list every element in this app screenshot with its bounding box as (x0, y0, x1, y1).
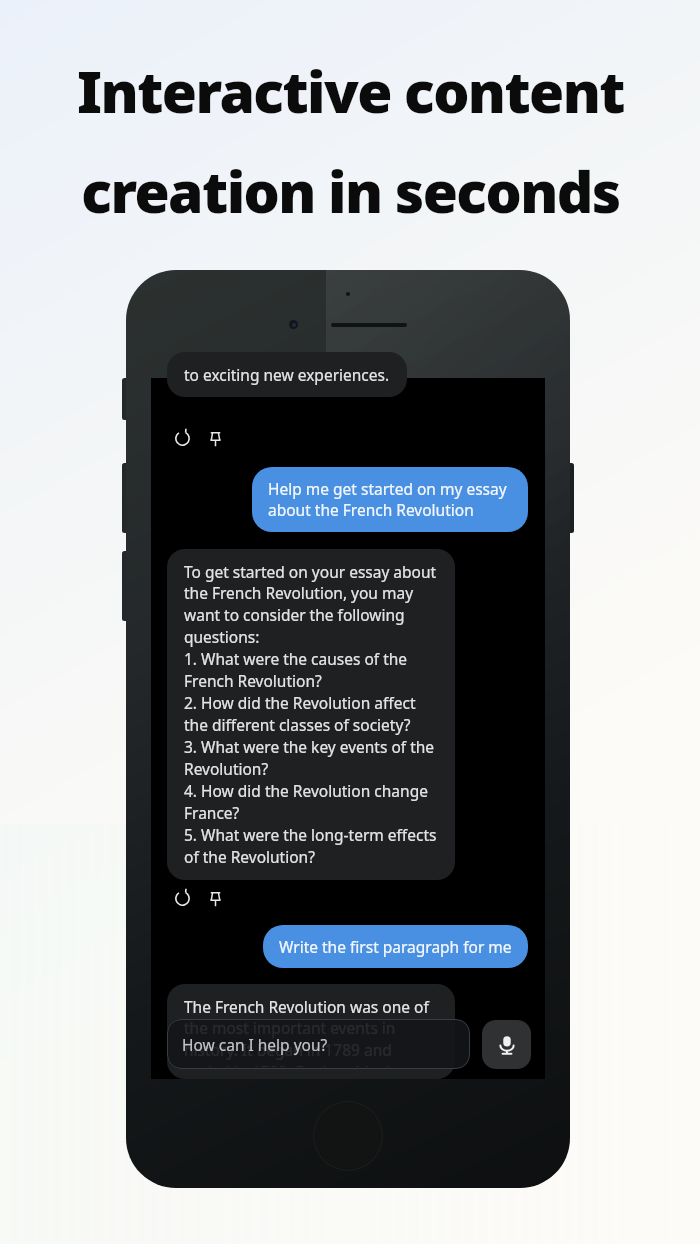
button[interactable]: Help me get started on my essay about th… (252, 467, 528, 532)
button[interactable]: Voice input (482, 1020, 531, 1069)
staticText: Help me get started on my essay about th… (268, 478, 512, 521)
staticText: To get started on your essay about the F… (184, 561, 438, 868)
staticText: to exciting new experiences. (184, 364, 390, 385)
staticText: Write the first paragraph for me (279, 936, 512, 957)
button[interactable]: Pin (202, 425, 228, 451)
button[interactable]: Write the first paragraph for me (263, 925, 528, 968)
button[interactable]: To get started on your essay about the F… (167, 549, 455, 880)
button[interactable]: Regenerate (169, 425, 195, 451)
staticText: Interactive content (77, 52, 624, 130)
staticText: The French Revolution was one of the mos… (184, 996, 438, 1067)
staticText: How can I help you? (182, 1034, 328, 1055)
button[interactable]: How can I help you? (167, 1019, 470, 1069)
staticText: creation in seconds (81, 152, 620, 230)
button[interactable]: Regenerate (169, 885, 195, 911)
button[interactable]: Pin (202, 885, 228, 911)
